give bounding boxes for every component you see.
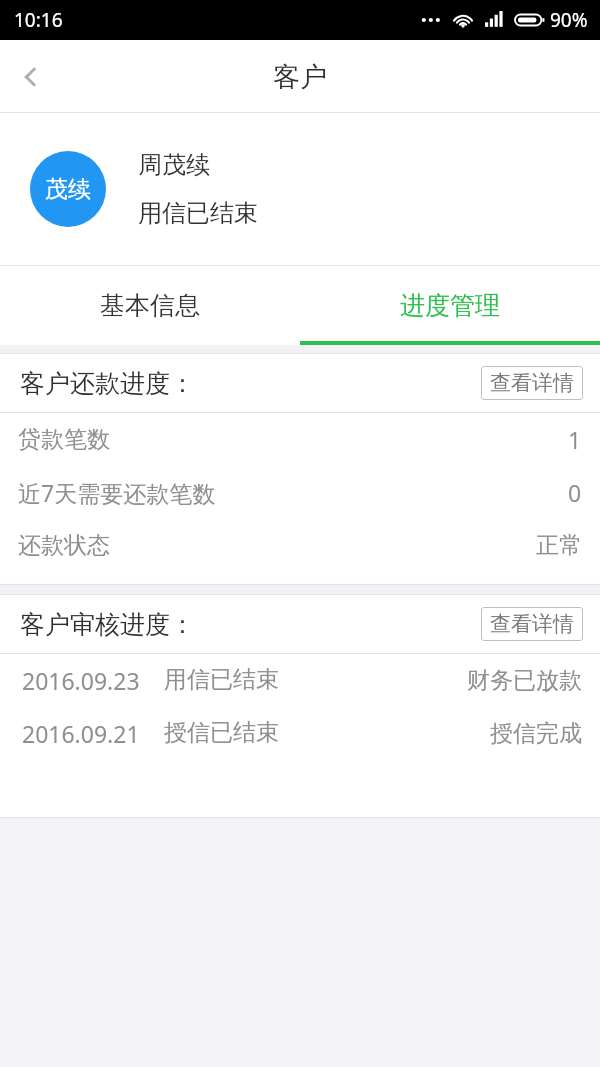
- staticText: 授信已结束: [164, 718, 279, 747]
- staticText: 查看详情: [490, 611, 574, 637]
- staticText: 正常: [536, 531, 582, 560]
- staticText: 2016.09.23: [22, 665, 140, 696]
- staticText: 茂续: [45, 175, 91, 204]
- button[interactable]: 2016.09.21: [0, 707, 600, 760]
- button[interactable]: 基本信息: [0, 266, 300, 345]
- staticText: 授信完成: [490, 719, 582, 748]
- button[interactable]: 茂续: [0, 113, 600, 265]
- staticText: 用信已结束: [138, 198, 258, 228]
- staticText: 查看详情: [490, 370, 574, 396]
- button[interactable]: Back: [0, 46, 62, 108]
- staticText: 基本信息: [100, 290, 200, 321]
- button[interactable]: 进度管理: [300, 266, 600, 345]
- staticText: 客户审核进度：: [20, 609, 195, 640]
- staticText: 贷款笔数: [18, 425, 110, 454]
- button[interactable]: 2016.09.23: [0, 654, 600, 707]
- button[interactable]: 还款状态: [0, 519, 600, 572]
- button[interactable]: 查看详情: [481, 607, 583, 641]
- staticText: 2016.09.21: [22, 718, 140, 749]
- staticText: 90%: [550, 7, 588, 33]
- staticText: 客户还款进度：: [20, 368, 195, 399]
- staticText: 客户: [273, 60, 327, 94]
- staticText: 进度管理: [400, 290, 500, 321]
- staticText: 财务已放款: [467, 666, 582, 695]
- staticText: 用信已结束: [164, 665, 279, 694]
- button[interactable]: 近7天需要还款笔数: [0, 466, 600, 519]
- staticText: 10:16: [14, 7, 63, 33]
- staticText: 还款状态: [18, 531, 110, 560]
- button[interactable]: 贷款笔数: [0, 413, 600, 466]
- staticText: 近7天需要还款笔数: [18, 477, 216, 508]
- staticText: 0: [568, 477, 582, 508]
- staticText: 周茂续: [138, 150, 210, 180]
- staticText: 1: [568, 424, 582, 455]
- button[interactable]: 查看详情: [481, 366, 583, 400]
